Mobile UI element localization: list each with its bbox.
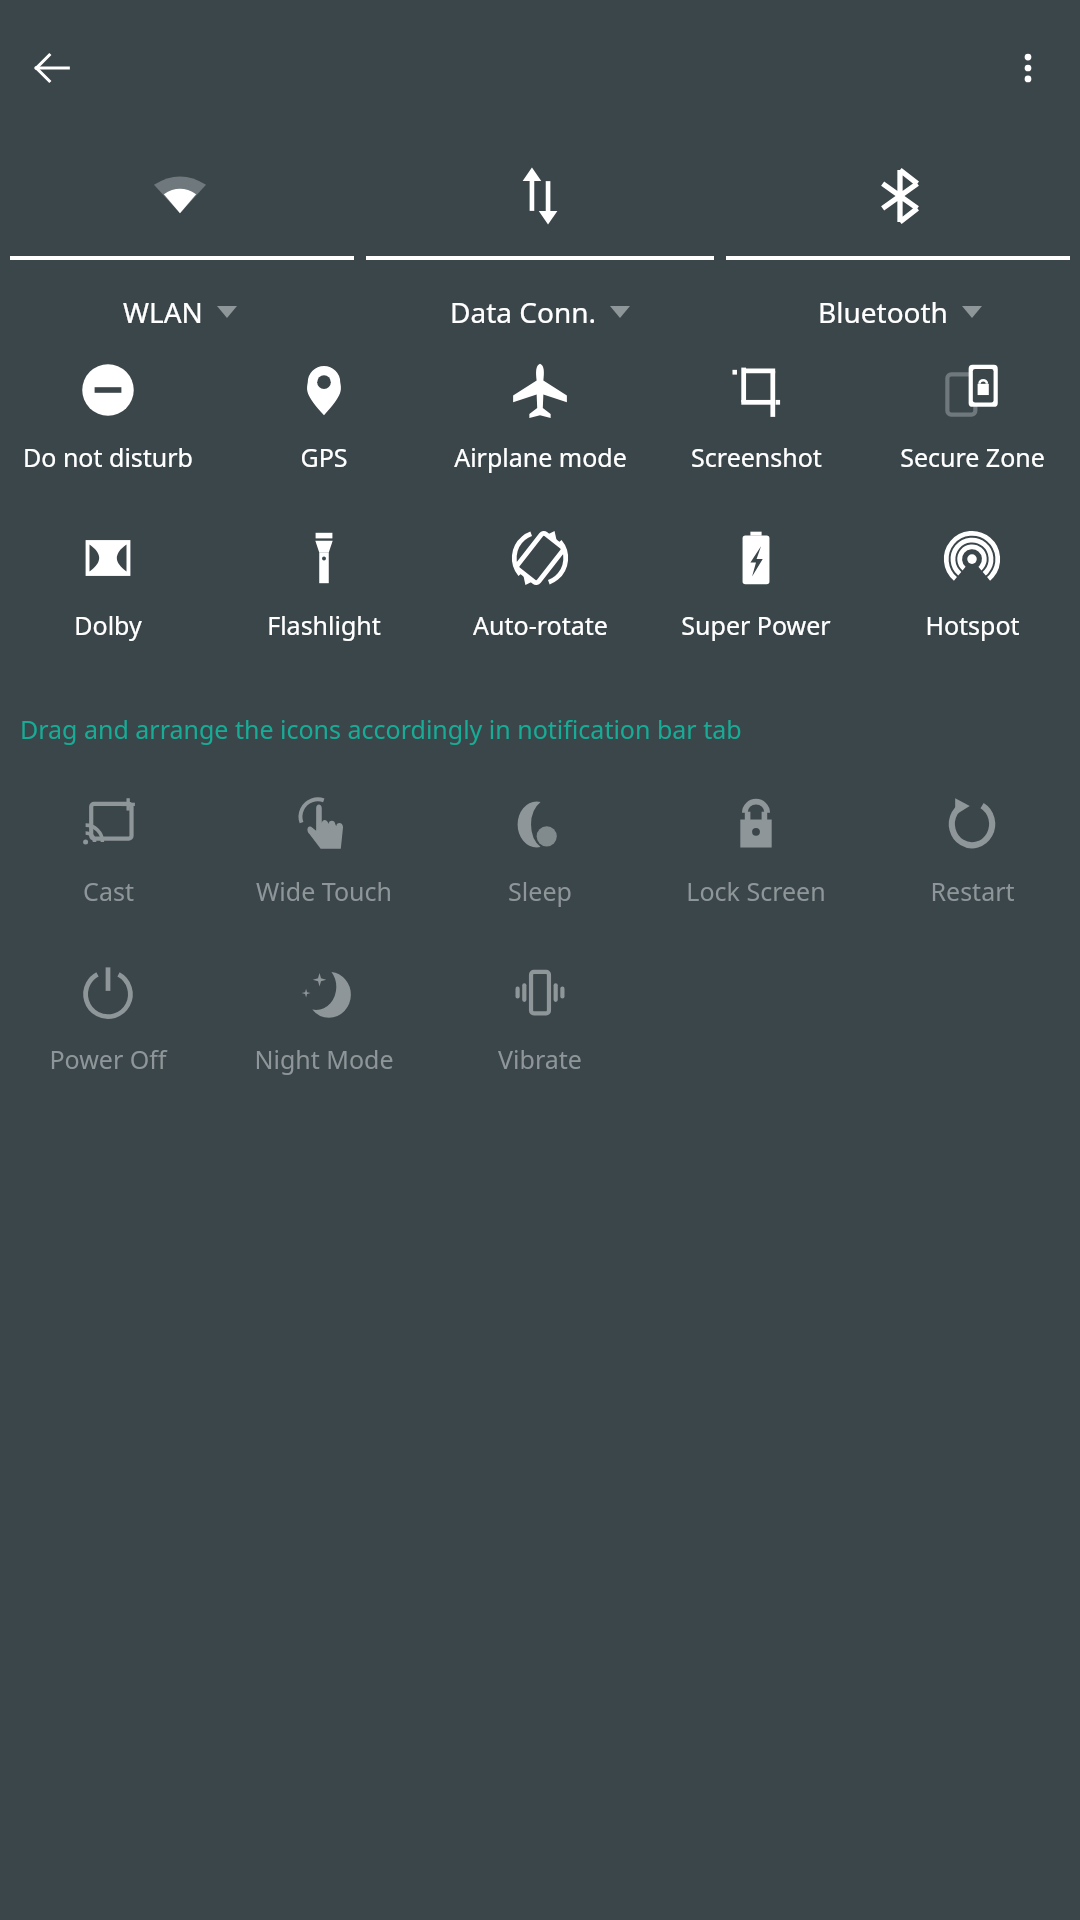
button[interactable]: WLAN: [0, 286, 360, 338]
staticText: Auto-rotate: [473, 608, 608, 642]
staticText: Flashlight: [267, 608, 381, 642]
staticText: Secure Zone: [900, 440, 1045, 474]
button[interactable]: Flashlight: [216, 530, 432, 642]
button[interactable]: Toggle: [720, 136, 1080, 256]
staticText: Cast: [83, 874, 134, 908]
button[interactable]: Bluetooth: [720, 286, 1080, 338]
button[interactable]: Back: [16, 32, 88, 104]
button[interactable]: Wide Touch: [216, 796, 432, 908]
staticText: Lock Screen: [686, 874, 826, 908]
button[interactable]: Toggle: [360, 136, 720, 256]
staticText: Screenshot: [691, 440, 822, 474]
staticText: Sleep: [508, 874, 572, 908]
button[interactable]: Vibrate: [432, 964, 648, 1076]
staticText: Hotspot: [925, 608, 1020, 642]
button[interactable]: Super Power: [648, 530, 864, 642]
button[interactable]: Secure Zone: [864, 362, 1080, 474]
staticText: Data Conn.: [450, 293, 596, 331]
staticText: Restart: [930, 874, 1015, 908]
staticText: Bluetooth: [818, 293, 948, 331]
staticText: Drag and arrange the icons accordingly i…: [20, 712, 742, 746]
staticText: Wide Touch: [256, 874, 392, 908]
staticText: Vibrate: [498, 1042, 582, 1076]
button[interactable]: Airplane mode: [432, 362, 648, 474]
button[interactable]: Power Off: [0, 964, 216, 1076]
button[interactable]: Data Conn.: [360, 286, 720, 338]
button[interactable]: Toggle: [0, 136, 360, 256]
staticText: Night Mode: [254, 1042, 394, 1076]
staticText: Do not disturb: [23, 440, 193, 474]
staticText: WLAN: [123, 293, 203, 331]
button[interactable]: Cast: [0, 796, 216, 908]
button[interactable]: Lock Screen: [648, 796, 864, 908]
staticText: Power Off: [49, 1042, 167, 1076]
staticText: Airplane mode: [454, 440, 627, 474]
button[interactable]: Auto-rotate: [432, 530, 648, 642]
button[interactable]: More options: [992, 32, 1064, 104]
button[interactable]: Hotspot: [864, 530, 1080, 642]
button[interactable]: Do not disturb: [0, 362, 216, 474]
button[interactable]: Sleep: [432, 796, 648, 908]
staticText: Super Power: [681, 608, 831, 642]
button[interactable]: Dolby: [0, 530, 216, 642]
button[interactable]: Restart: [864, 796, 1080, 908]
staticText: GPS: [300, 440, 348, 474]
button[interactable]: Night Mode: [216, 964, 432, 1076]
staticText: Dolby: [74, 608, 142, 642]
button[interactable]: GPS: [216, 362, 432, 474]
button[interactable]: Screenshot: [648, 362, 864, 474]
